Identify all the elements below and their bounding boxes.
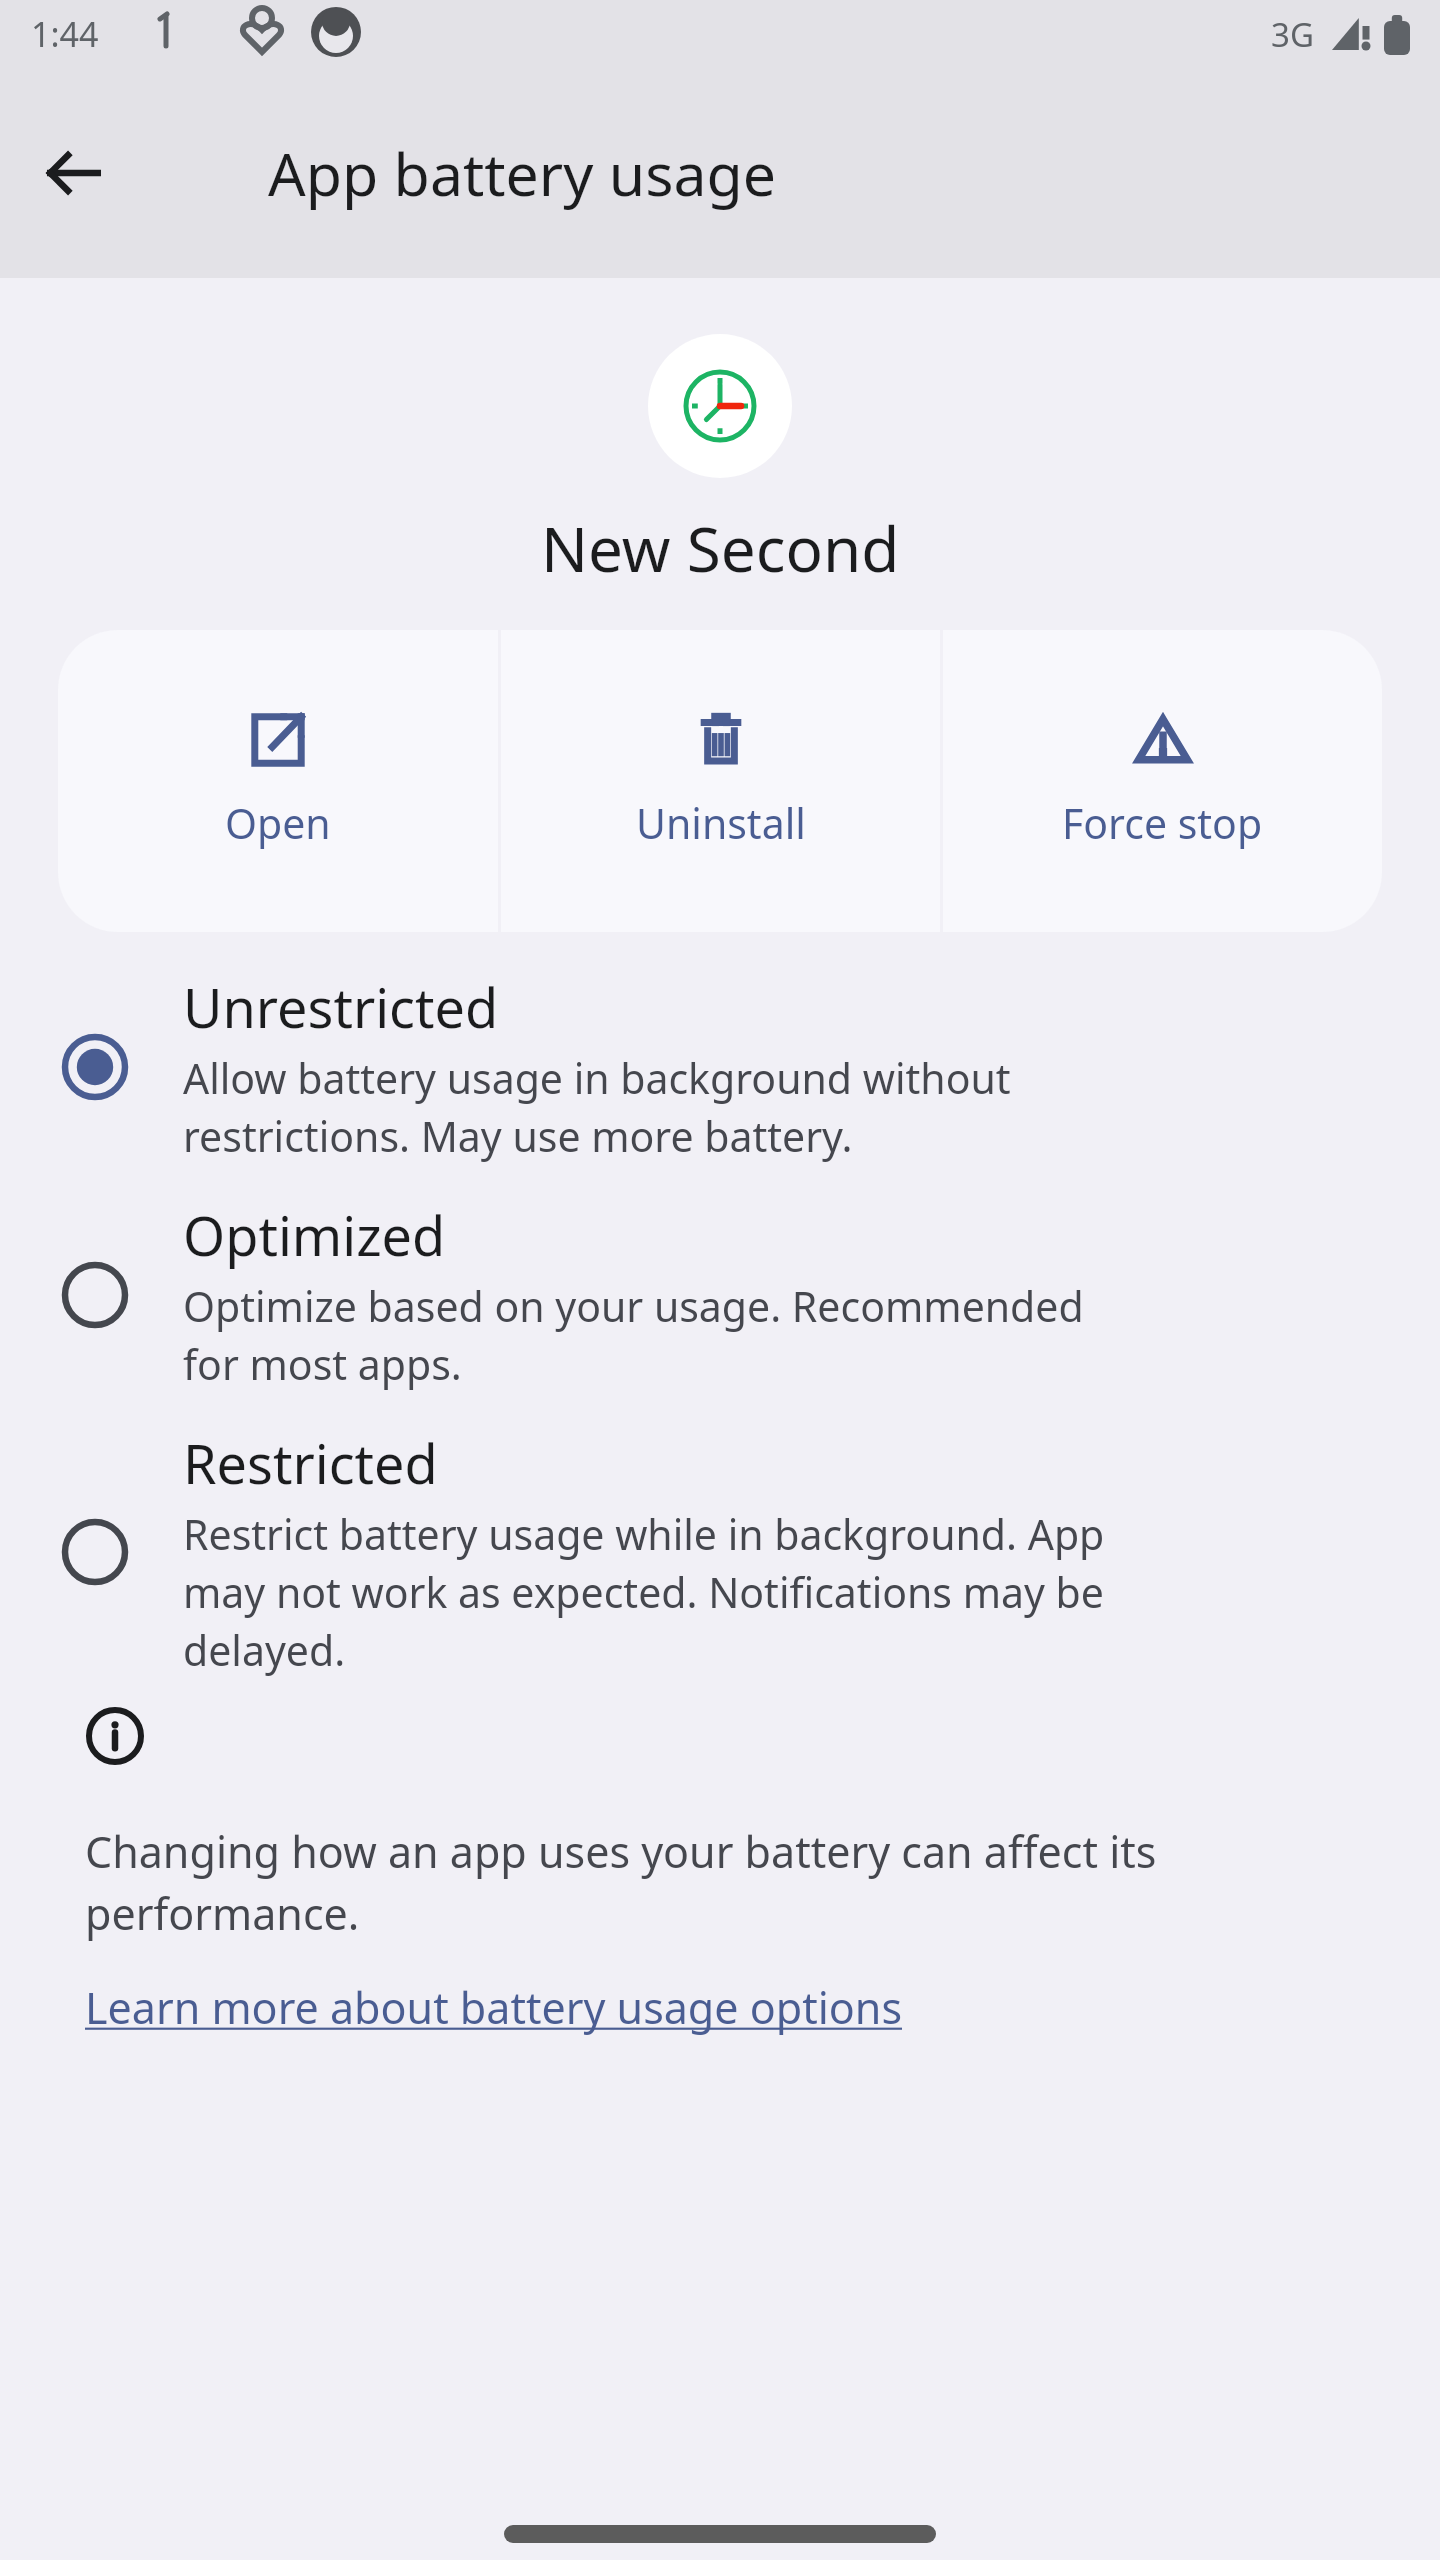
button[interactable]: Restricted bbox=[0, 1426, 1440, 1678]
staticText: Optimized bbox=[183, 1198, 446, 1272]
staticText: Open bbox=[225, 795, 331, 851]
staticText: New Second bbox=[541, 506, 900, 590]
button[interactable]: Optimized bbox=[0, 1198, 1440, 1392]
button[interactable]: Back bbox=[26, 125, 122, 221]
other: Information bbox=[85, 1706, 145, 1766]
staticText: Restrict battery usage while in backgrou… bbox=[183, 1506, 1105, 1678]
staticText: 1:44 bbox=[31, 11, 99, 57]
button[interactable]: Open bbox=[58, 630, 498, 932]
button[interactable]: Force stop bbox=[943, 630, 1382, 932]
staticText: Allow battery usage in background withou… bbox=[183, 1050, 1011, 1164]
staticText: App battery usage bbox=[268, 133, 777, 213]
button[interactable]: Unrestricted bbox=[0, 970, 1440, 1164]
staticText: Unrestricted bbox=[183, 970, 499, 1044]
staticText: 3G bbox=[1271, 12, 1314, 57]
button[interactable]: Learn more about battery usage options bbox=[85, 1978, 902, 2037]
staticText: Learn more about battery usage options bbox=[85, 1978, 902, 2037]
staticText: Force stop bbox=[1062, 795, 1263, 851]
staticText: Restricted bbox=[183, 1426, 438, 1500]
button[interactable]: Uninstall bbox=[501, 630, 940, 932]
staticText: Uninstall bbox=[636, 795, 806, 851]
staticText: Changing how an app uses your battery ca… bbox=[85, 1822, 1157, 1942]
staticText: Optimize based on your usage. Recommende… bbox=[183, 1278, 1084, 1392]
